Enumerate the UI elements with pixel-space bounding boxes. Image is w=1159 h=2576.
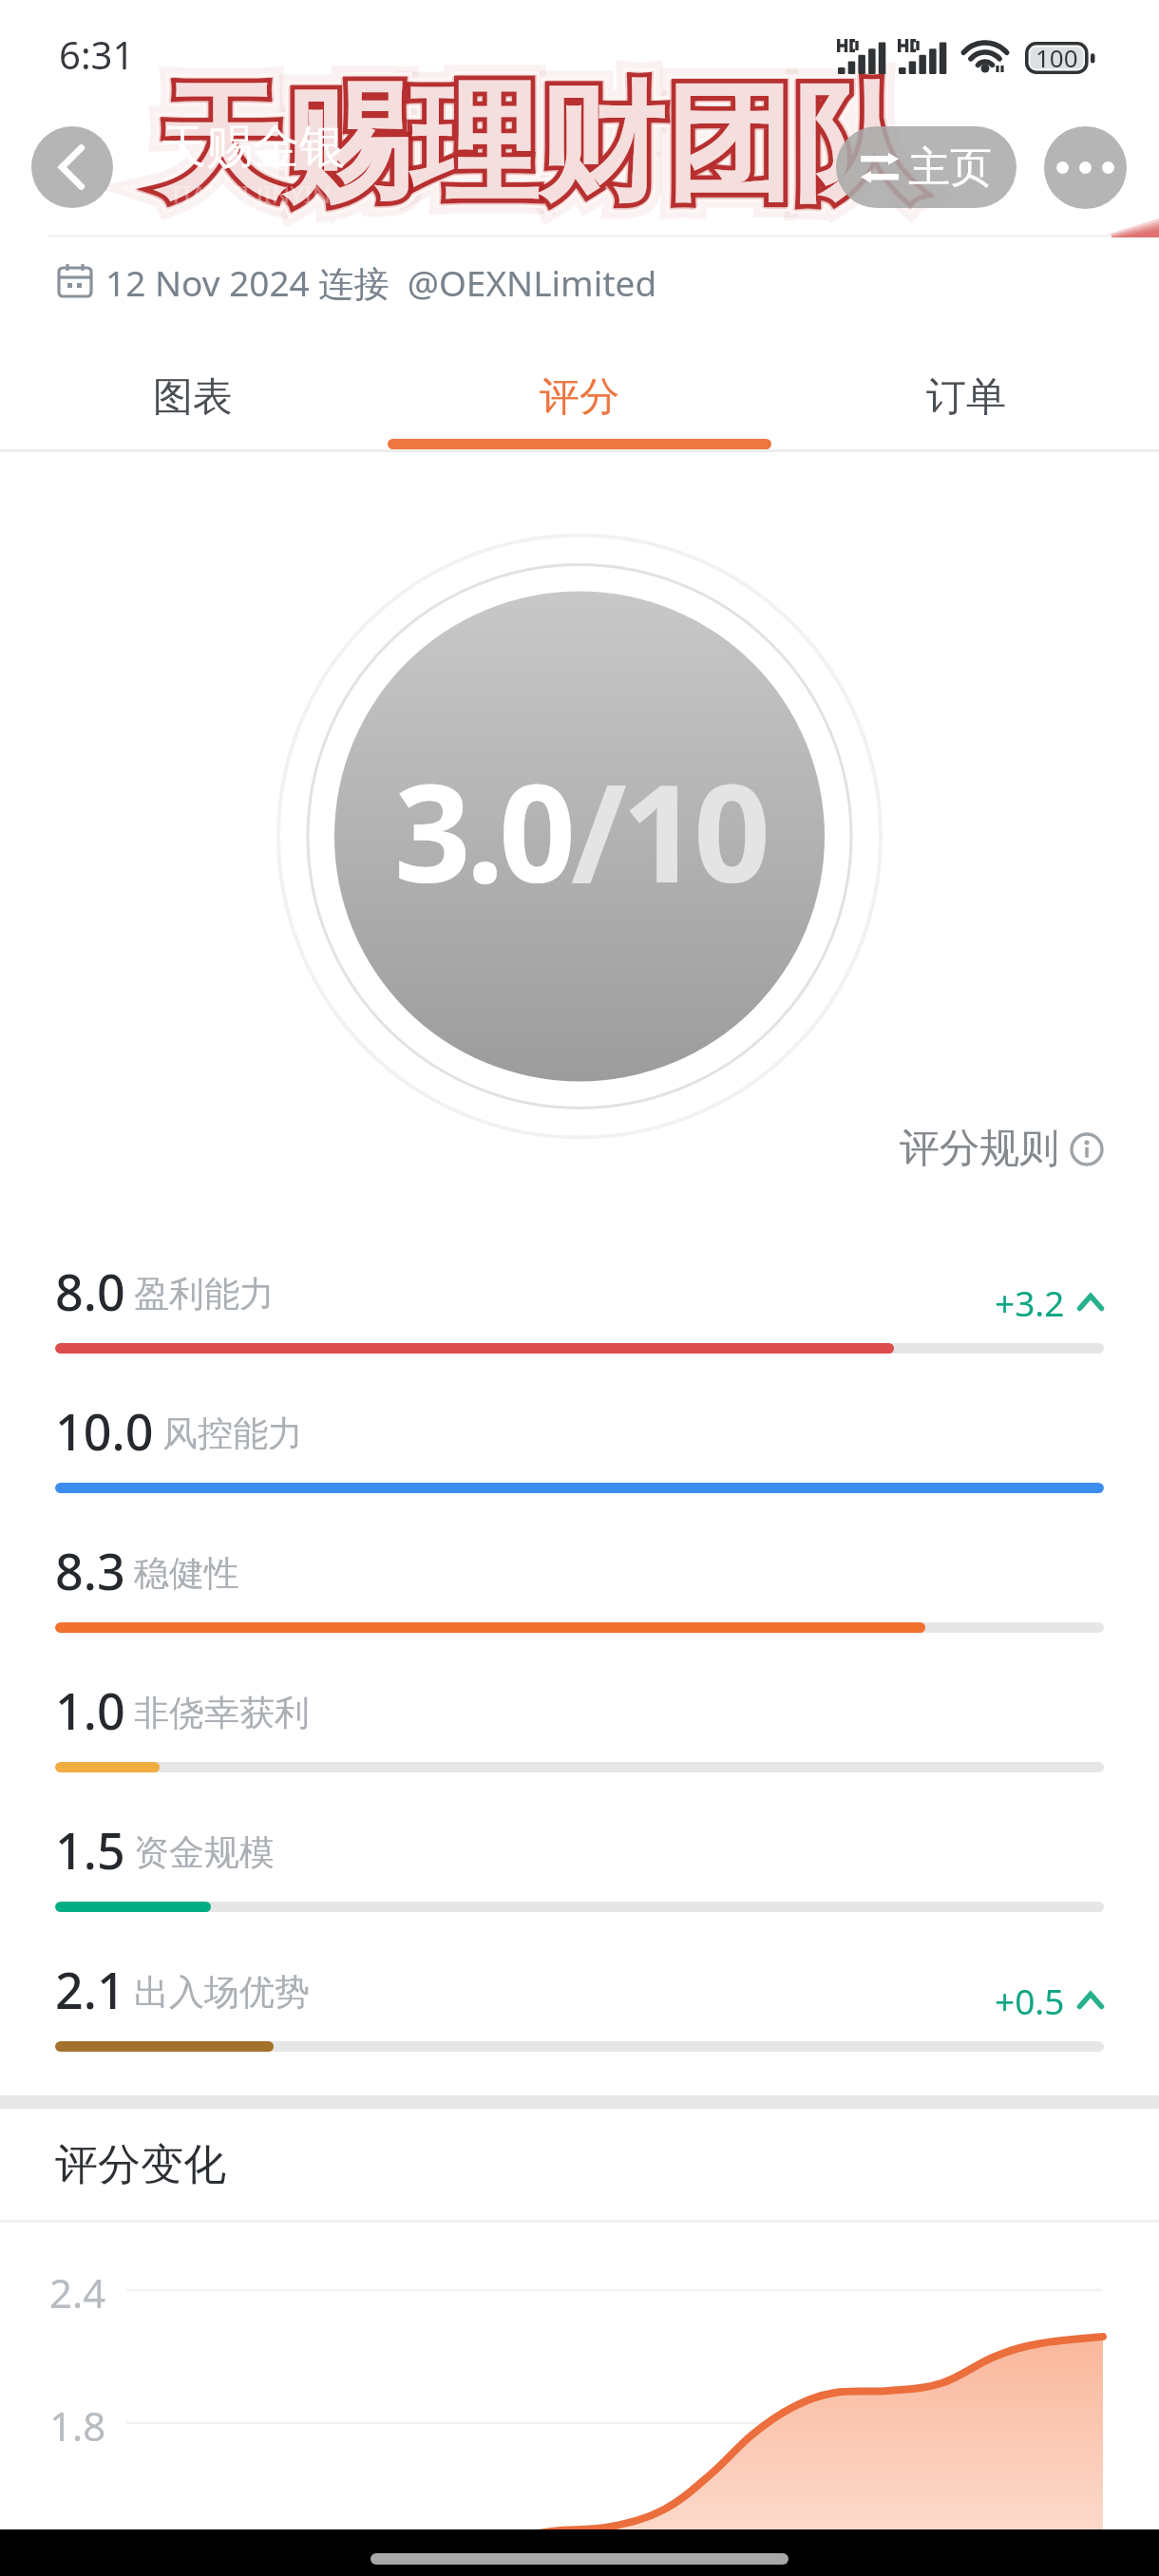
button[interactable]: 评分规则 (900, 1124, 1104, 1174)
button[interactable]: 1.0 (0, 1676, 1159, 1816)
staticText: /10 (571, 739, 766, 921)
button[interactable]: More options (1044, 126, 1127, 209)
staticText: 天赐理财团队 (156, 65, 920, 225)
staticText: 资金规模 (134, 1830, 275, 1875)
staticText: 6:31 (59, 28, 135, 80)
staticText: 图表 (153, 372, 233, 423)
staticText: 1.5 (55, 1816, 125, 1884)
staticText: 主页 (908, 142, 992, 194)
button[interactable]: 评分 (386, 328, 772, 452)
staticText: 3.0 (394, 739, 571, 921)
staticText: 1.8 (49, 2398, 106, 2453)
staticText: 天赐理财团队 (156, 66, 920, 227)
staticText: +3.2 (995, 1279, 1065, 1326)
staticText: TIANCI JINYIN (169, 177, 332, 210)
staticText: 10.0 (55, 1397, 154, 1465)
button[interactable]: 1.5 (0, 1816, 1159, 1956)
staticText: 2.4 (49, 2265, 106, 2320)
staticText: 2.1 (55, 1956, 125, 2023)
staticText: 出入场优势 (134, 1970, 310, 2015)
staticText: 非侥幸获利 (134, 1691, 310, 1735)
button[interactable]: Back (31, 126, 113, 208)
staticText: +0.5 (995, 1977, 1065, 2024)
staticText: 8.3 (55, 1537, 125, 1604)
staticText: 订单 (926, 372, 1006, 423)
staticText: 100 (1035, 41, 1078, 73)
staticText: 评分变化 (55, 2138, 226, 2192)
button[interactable]: 2.1 (0, 1956, 1159, 2095)
staticText: 天赐理财团队 (154, 66, 918, 226)
staticText: 稳健性 (134, 1551, 239, 1596)
staticText: 天赐理财团队 (156, 65, 920, 225)
button[interactable]: 10.0 (0, 1397, 1159, 1537)
staticText: 天赐理财团队 (156, 65, 920, 225)
staticText: 1.0 (55, 1676, 125, 1744)
staticText: 评分规则 (900, 1124, 1059, 1174)
button[interactable]: 8.0 (0, 1258, 1159, 1397)
button[interactable]: 订单 (772, 328, 1159, 452)
staticText: 8.0 (55, 1258, 125, 1325)
staticText: 12 Nov 2024 连接 @OEXNLimited (105, 258, 657, 307)
staticText: 天赐理财团队 (158, 64, 921, 224)
staticText: 盈利能力 (134, 1272, 275, 1316)
staticText: 天赐金银 (160, 118, 346, 177)
button[interactable]: 图表 (0, 328, 386, 452)
staticText: 评分 (540, 372, 619, 423)
staticText: 天赐理财团队 (156, 65, 920, 225)
button[interactable]: 8.3 (0, 1537, 1159, 1676)
staticText: 风控能力 (162, 1411, 303, 1456)
button[interactable]: 主页 (836, 126, 1016, 208)
